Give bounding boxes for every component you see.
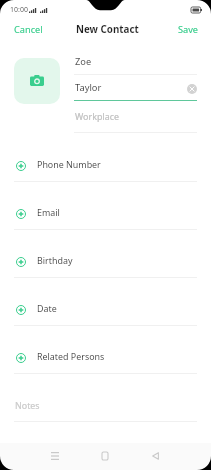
staticText: Email	[37, 206, 60, 218]
staticText: Taylor	[75, 81, 102, 94]
button[interactable]: Related Persons	[0, 344, 211, 374]
staticText: Related Persons	[37, 350, 105, 362]
button[interactable]: Date	[0, 296, 211, 326]
button[interactable]: Birthday	[0, 248, 211, 278]
button[interactable]: Home	[91, 442, 119, 470]
staticText: New Contact	[76, 23, 139, 36]
staticText: Workplace	[75, 110, 119, 122]
staticText: Birthday	[37, 254, 73, 266]
button[interactable]: Save	[170, 19, 207, 40]
button[interactable]: Cancel	[6, 19, 51, 40]
staticText: Cancel	[14, 23, 43, 36]
staticText: Save	[178, 23, 199, 36]
button[interactable]: Clear	[187, 84, 197, 94]
staticText: 10:00	[10, 5, 28, 15]
staticText: Date	[37, 302, 57, 314]
button[interactable]: Add photo	[14, 58, 60, 104]
button[interactable]: Back	[141, 442, 169, 470]
button[interactable]: Phone Number	[0, 152, 211, 182]
staticText: Zoe	[75, 55, 92, 68]
staticText: Notes	[15, 399, 40, 411]
staticText: Phone Number	[37, 158, 101, 170]
button[interactable]: Recents	[41, 442, 69, 470]
button[interactable]: Email	[0, 200, 211, 230]
